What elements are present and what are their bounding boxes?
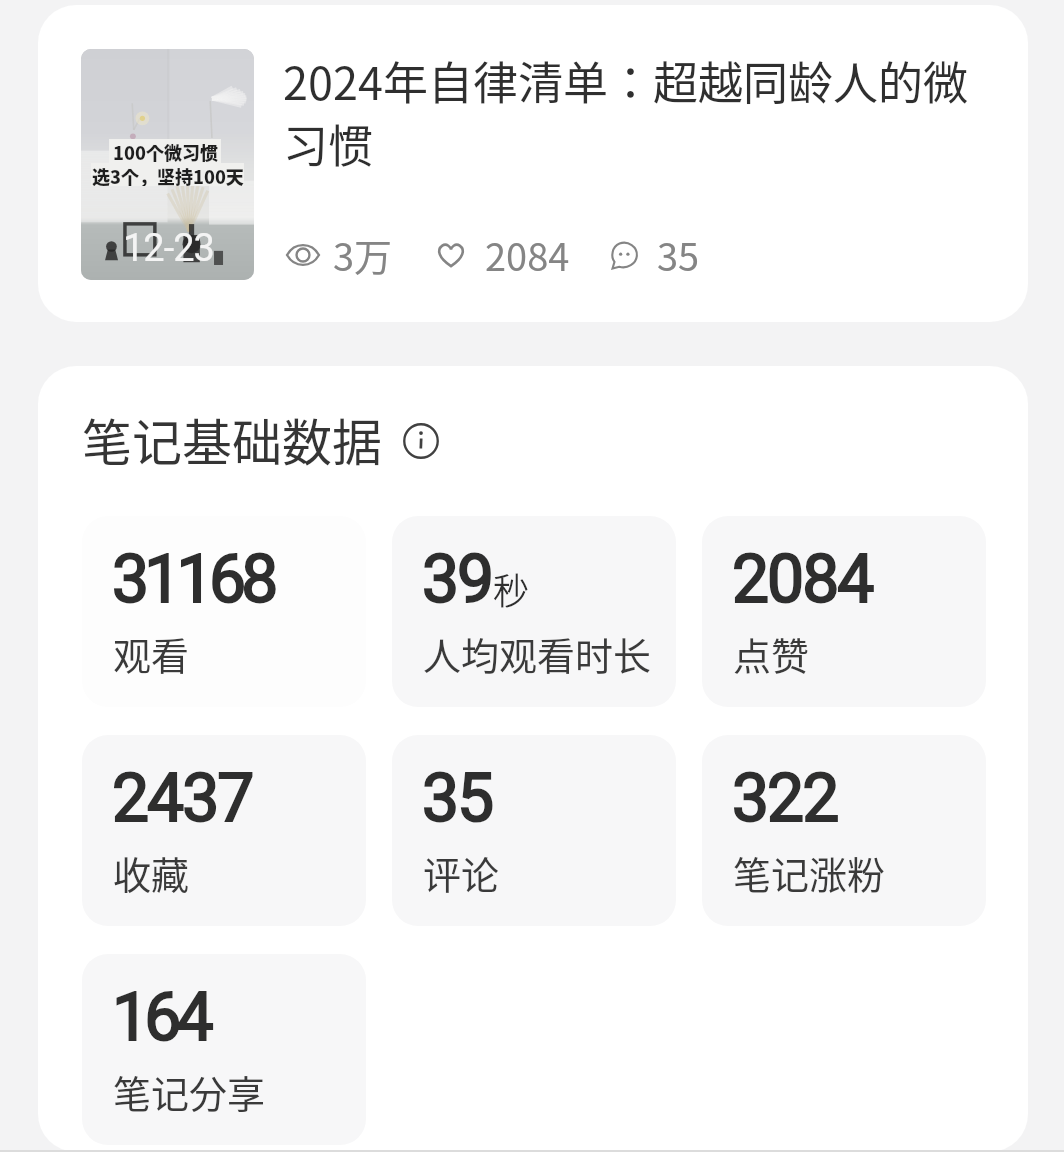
staticText: 观看: [113, 626, 190, 681]
staticText: 人均观看时长: [423, 626, 652, 681]
button[interactable]: 39: [392, 516, 676, 707]
other: Comments: [610, 241, 638, 269]
staticText: 收藏: [113, 845, 190, 900]
staticText: 2024年自律清单：超越同龄人的微习惯: [283, 48, 973, 176]
staticText: 点赞: [733, 626, 810, 681]
button[interactable]: 322: [702, 735, 986, 926]
staticText: 35: [422, 760, 493, 837]
staticText: 秒: [493, 562, 530, 614]
staticText: 2084: [485, 227, 570, 282]
staticText: 322: [732, 760, 838, 837]
button[interactable]: 31168: [82, 516, 366, 707]
button[interactable]: 笔记基础数据: [82, 403, 439, 475]
staticText: 选3个，坚持100天: [92, 163, 244, 186]
other: Likes: [436, 241, 466, 268]
button[interactable]: 164: [82, 954, 366, 1145]
staticText: 评论: [423, 845, 500, 900]
button[interactable]: 100个微习惯: [38, 5, 1028, 322]
staticText: 3万: [333, 227, 393, 282]
button[interactable]: 2084: [702, 516, 986, 707]
staticText: 笔记分享: [113, 1064, 266, 1119]
staticText: 31168: [112, 541, 274, 618]
staticText: 2437: [112, 760, 253, 837]
staticText: 35: [657, 227, 700, 282]
staticText: 100个微习惯: [113, 139, 218, 163]
staticText: 笔记涨粉: [733, 845, 886, 900]
staticText: 2084: [732, 541, 873, 618]
staticText: 12-23: [123, 226, 214, 271]
staticText: 笔记基础数据: [82, 403, 382, 475]
staticText: 39: [422, 541, 493, 618]
button[interactable]: 35: [392, 735, 676, 926]
other: Info: [403, 423, 439, 459]
staticText: 164: [112, 979, 209, 1056]
other: Views: [286, 241, 320, 269]
button[interactable]: 2437: [82, 735, 366, 926]
